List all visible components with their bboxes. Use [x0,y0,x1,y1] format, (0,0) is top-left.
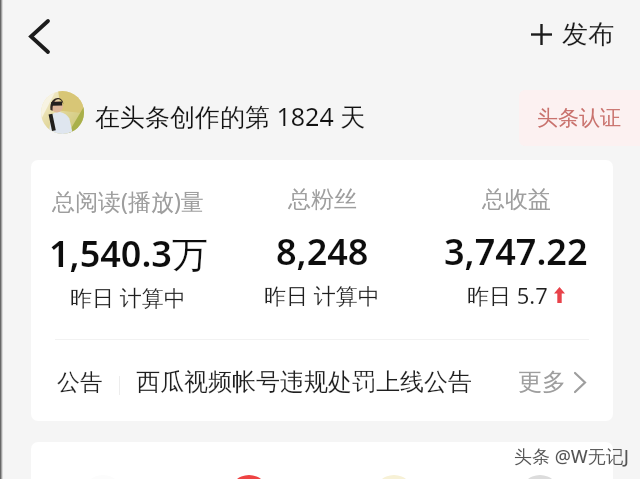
staticText: 昨日 计算中 [264,280,380,310]
staticText: 公告 [57,368,103,397]
button[interactable]: Profile photo [41,91,84,134]
button[interactable]: Back [16,13,62,59]
button[interactable]: 公告 [31,343,613,421]
button[interactable]: 总阅读(播放)量 [31,160,225,339]
button[interactable]: Shortcut [520,475,560,479]
button[interactable]: 总收益 [419,160,613,339]
staticText: 3,747.22 [444,227,588,276]
staticText: 头条 @W无记J [514,444,630,469]
button[interactable]: Shortcut [229,475,269,479]
staticText: 更多 [518,367,566,397]
staticText: 总收益 [482,185,551,214]
button[interactable]: Shortcut [374,475,414,479]
button[interactable]: 头条认证 [519,90,640,146]
button[interactable]: 总粉丝 [225,160,419,339]
staticText: 头条认证 [537,105,621,131]
staticText: 在头条创作的第 1824 天 [95,99,366,133]
staticText: 西瓜视频帐号违规处罚上线公告 [136,367,472,397]
staticText: 1,540.3万 [49,229,208,278]
button[interactable]: 发布 [531,13,614,55]
staticText: 总粉丝 [288,185,357,214]
staticText: 昨日 5.7 [467,280,548,310]
staticText: 发布 [562,18,614,51]
staticText: 8,248 [276,227,369,276]
staticText: 总阅读(播放)量 [52,185,204,216]
staticText: 昨日 计算中 [70,282,186,312]
